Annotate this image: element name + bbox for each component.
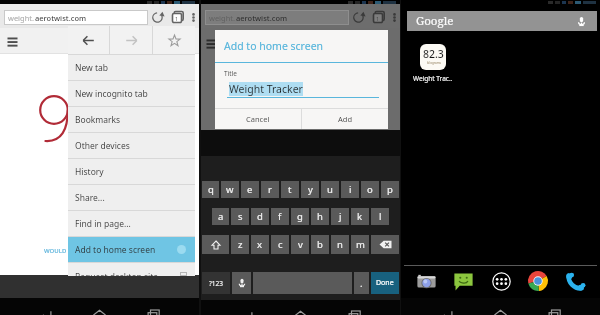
- button[interactable]: Messaging: [451, 269, 475, 293]
- button[interactable]: t: [281, 181, 299, 198]
- staticText: v: [298, 238, 303, 251]
- button[interactable]: m: [351, 235, 369, 254]
- button[interactable]: o: [361, 181, 379, 198]
- button[interactable]: q: [202, 181, 219, 198]
- button[interactable]: j: [331, 208, 349, 225]
- button[interactable]: Tabs: [368, 6, 389, 28]
- button[interactable]: Menu: [6, 34, 19, 47]
- button[interactable]: Back: [238, 308, 255, 315]
- staticText: New incognito tab: [75, 88, 148, 100]
- button[interactable]: c: [271, 235, 289, 254]
- button[interactable]: u: [321, 181, 339, 198]
- button[interactable]: More options: [188, 6, 199, 28]
- button[interactable]: weight.: [205, 10, 349, 25]
- button[interactable]: More options: [389, 6, 400, 28]
- button[interactable]: Forward: [110, 26, 152, 54]
- button[interactable]: k: [351, 208, 369, 225]
- button[interactable]: Chrome: [526, 269, 550, 293]
- staticText: aerotwist.com: [236, 13, 288, 23]
- button[interactable]: History: [68, 159, 195, 184]
- button[interactable]: weight.: [4, 10, 148, 25]
- button[interactable]: Recents: [346, 308, 363, 315]
- button[interactable]: ?123: [202, 272, 230, 294]
- button[interactable]: r: [261, 181, 279, 198]
- button[interactable]: Reload: [349, 6, 368, 28]
- staticText: aerotwist.com: [35, 13, 87, 23]
- button[interactable]: w: [221, 181, 239, 198]
- button[interactable]: Voice input: [232, 272, 251, 294]
- button[interactable]: n: [331, 235, 349, 254]
- staticText: 82.3: [423, 47, 444, 61]
- button[interactable]: Done: [371, 272, 399, 294]
- button[interactable]: Camera: [414, 269, 438, 293]
- staticText: Done: [376, 278, 394, 288]
- button[interactable]: 82.3: [407, 44, 459, 83]
- staticText: c: [278, 238, 283, 251]
- button[interactable]: Add to home screen: [68, 237, 195, 262]
- staticText: g: [297, 210, 303, 223]
- button[interactable]: New incognito tab: [68, 81, 195, 106]
- button[interactable]: Reload: [148, 6, 167, 28]
- staticText: .: [360, 277, 363, 290]
- button[interactable]: g: [291, 208, 309, 225]
- staticText: Weight Trac..: [413, 74, 453, 83]
- button[interactable]: a: [212, 208, 229, 225]
- button[interactable]: Back: [438, 306, 455, 315]
- staticText: Title: [224, 69, 237, 78]
- button[interactable]: Find in page...: [68, 211, 195, 236]
- staticText: i: [349, 183, 352, 196]
- button[interactable]: b: [311, 235, 329, 254]
- button[interactable]: Recents: [145, 306, 162, 315]
- button[interactable]: .: [354, 272, 369, 294]
- button[interactable]: Phone: [563, 269, 587, 293]
- staticText: f: [278, 210, 282, 223]
- staticText: e: [247, 183, 253, 196]
- button[interactable]: v: [291, 235, 309, 254]
- button[interactable]: Other devices: [68, 133, 195, 158]
- button[interactable]: Google: [407, 11, 597, 31]
- staticText: d: [257, 210, 263, 223]
- button[interactable]: x: [251, 235, 269, 254]
- staticText: Request desktop site: [75, 271, 159, 276]
- button[interactable]: Backspace: [371, 235, 399, 254]
- staticText: Cancel: [246, 114, 270, 124]
- button[interactable]: f: [271, 208, 289, 225]
- button[interactable]: Home: [91, 306, 108, 315]
- button[interactable]: All apps: [489, 269, 513, 293]
- staticText: n: [337, 238, 343, 251]
- button[interactable]: y: [301, 181, 319, 198]
- staticText: 1: [376, 15, 380, 22]
- staticText: s: [238, 210, 243, 223]
- button[interactable]: New tab: [68, 55, 195, 80]
- button[interactable]: z: [231, 235, 249, 254]
- button[interactable]: Home: [492, 306, 509, 315]
- button[interactable]: s: [231, 208, 249, 225]
- button[interactable]: Add: [302, 109, 388, 129]
- staticText: Other devices: [75, 140, 130, 152]
- button[interactable]: Bookmarks: [68, 107, 195, 132]
- button[interactable]: d: [251, 208, 269, 225]
- button[interactable]: i: [341, 181, 359, 198]
- staticText: Google: [416, 13, 454, 29]
- button[interactable]: Tabs: [167, 6, 188, 28]
- button[interactable]: e: [241, 181, 259, 198]
- staticText: Share...: [75, 192, 105, 204]
- staticText: b: [317, 238, 323, 251]
- button[interactable]: Bookmark: [153, 26, 195, 54]
- button[interactable]: l: [371, 208, 389, 225]
- staticText: Add: [338, 114, 353, 124]
- other: Voice search: [576, 16, 587, 27]
- staticText: l: [379, 210, 382, 223]
- button[interactable]: Home: [292, 308, 309, 315]
- button[interactable]: Cancel: [215, 109, 301, 129]
- button[interactable]: p: [381, 181, 399, 198]
- button[interactable]: Back: [37, 306, 54, 315]
- button[interactable]: Recents: [546, 306, 563, 315]
- button[interactable]: Back: [68, 26, 109, 54]
- staticText: x: [257, 238, 263, 251]
- button[interactable]: Share...: [68, 185, 195, 210]
- button[interactable]: Shift: [202, 235, 229, 254]
- button[interactable]: h: [311, 208, 329, 225]
- staticText: a: [218, 210, 224, 223]
